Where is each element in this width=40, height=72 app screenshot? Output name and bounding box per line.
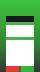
button[interactable] xyxy=(6,66,19,72)
button[interactable] xyxy=(20,66,34,72)
